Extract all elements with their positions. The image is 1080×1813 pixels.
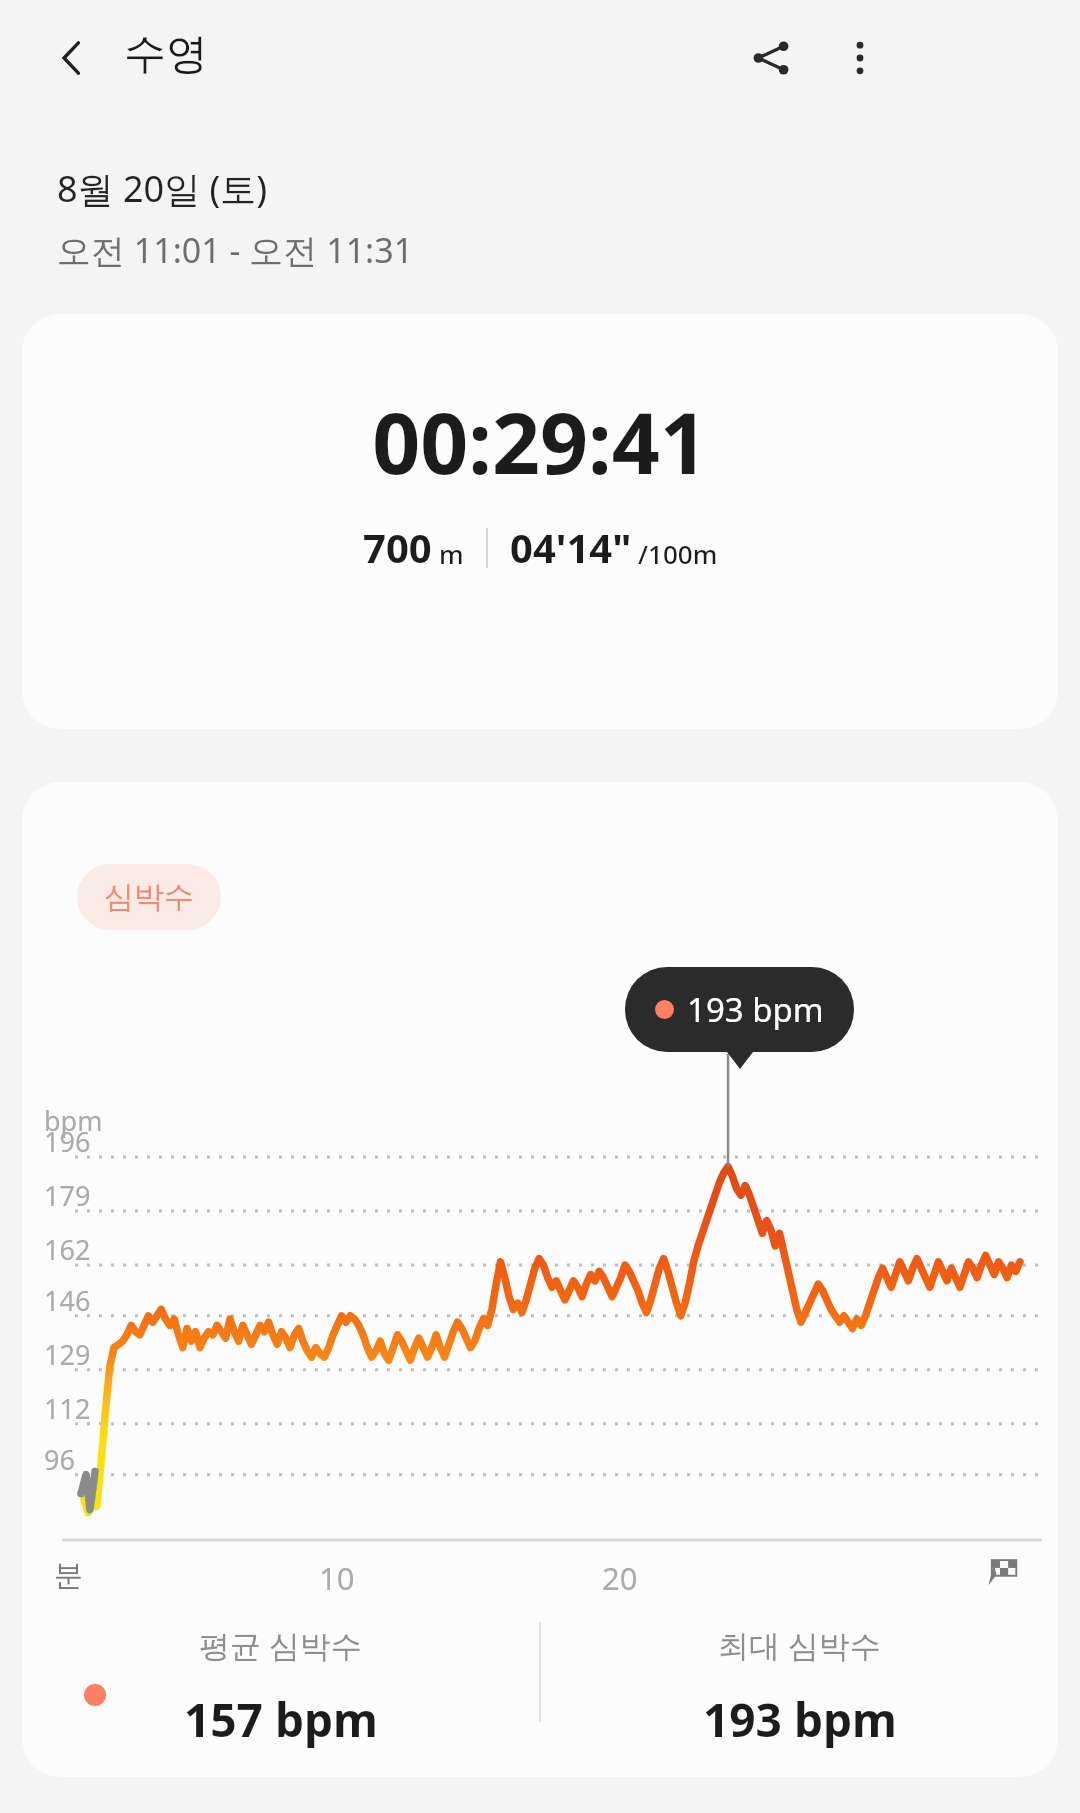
staticText: 700 xyxy=(363,520,432,574)
staticText: m xyxy=(439,536,464,571)
staticText: 00:29:41 xyxy=(372,384,708,498)
staticText: 수영 xyxy=(124,28,208,81)
staticText: 146 xyxy=(44,1282,91,1319)
staticText: 10 xyxy=(319,1557,355,1599)
other: Finish xyxy=(985,1554,1019,1588)
button[interactable]: 00:29:41 xyxy=(22,314,1058,729)
staticText: 심박수 xyxy=(104,878,194,916)
staticText: 분 xyxy=(54,1557,83,1594)
button[interactable]: 심박수 xyxy=(77,864,221,930)
staticText: 179 xyxy=(44,1177,91,1214)
button[interactable]: Back xyxy=(30,16,114,100)
button[interactable]: 193 bpm xyxy=(625,967,854,1052)
button[interactable]: Share xyxy=(729,16,813,100)
button[interactable]: 최대 심박수 xyxy=(541,1602,1058,1751)
staticText: 최대 심박수 xyxy=(718,1624,882,1666)
staticText: 112 xyxy=(44,1390,91,1427)
button[interactable]: More options xyxy=(818,16,902,100)
staticText: 평균 심박수 xyxy=(199,1624,363,1666)
button[interactable]: 평균 심박수 xyxy=(22,1602,539,1751)
staticText: 157 bpm xyxy=(184,1688,378,1751)
staticText: 162 xyxy=(44,1231,91,1268)
staticText: 193 bpm xyxy=(687,987,824,1032)
staticText: /100m xyxy=(638,536,718,571)
staticText: 129 xyxy=(44,1336,91,1373)
staticText: 196 xyxy=(44,1123,91,1160)
staticText: 193 bpm xyxy=(703,1688,897,1751)
staticText: 8월 20일 (토) xyxy=(57,164,268,213)
staticText: 96 xyxy=(44,1441,75,1478)
staticText: 20 xyxy=(602,1557,638,1599)
staticText: bpm xyxy=(44,1102,103,1139)
staticText: 04'14" xyxy=(510,520,632,574)
staticText: 오전 11:01 - 오전 11:31 xyxy=(57,227,414,273)
